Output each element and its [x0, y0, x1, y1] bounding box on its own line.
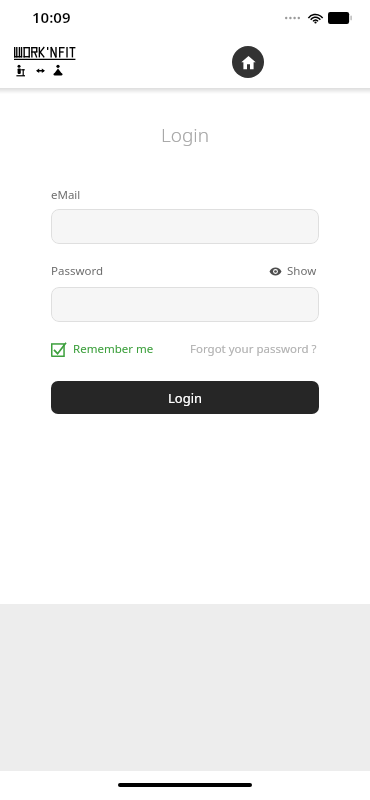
staticText: eMail: [51, 187, 81, 203]
staticText: Remember me: [73, 341, 154, 357]
button[interactable]: [51, 287, 319, 322]
staticText: Forgot your password ?: [190, 341, 317, 357]
button[interactable]: Show: [267, 261, 319, 281]
staticText: Password: [51, 263, 104, 279]
staticText: Login: [0, 122, 370, 148]
button[interactable]: [51, 209, 319, 244]
button[interactable]: Login: [51, 381, 319, 414]
button[interactable]: Remember me: [51, 339, 154, 359]
button[interactable]: Home: [232, 46, 264, 78]
staticText: Show: [287, 263, 317, 279]
staticText: 10:09: [32, 7, 71, 27]
button[interactable]: Forgot your password ?: [188, 339, 319, 359]
staticText: Login: [168, 389, 203, 407]
